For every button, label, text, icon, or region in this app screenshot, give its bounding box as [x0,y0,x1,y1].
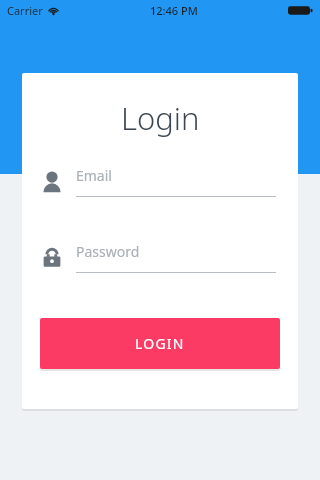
staticText: LOGIN [135,334,185,353]
button[interactable]: Email field [22,166,298,212]
button[interactable]: LOGIN [40,318,280,369]
staticText: 12:46 PM [150,3,198,18]
button[interactable]: Password field [22,242,298,288]
staticText: Email [76,166,112,185]
other: Password field [38,244,66,272]
other: Email field [38,168,66,196]
staticText: Login [121,97,200,139]
staticText: Carrier [7,3,43,18]
staticText: Password [76,242,140,261]
